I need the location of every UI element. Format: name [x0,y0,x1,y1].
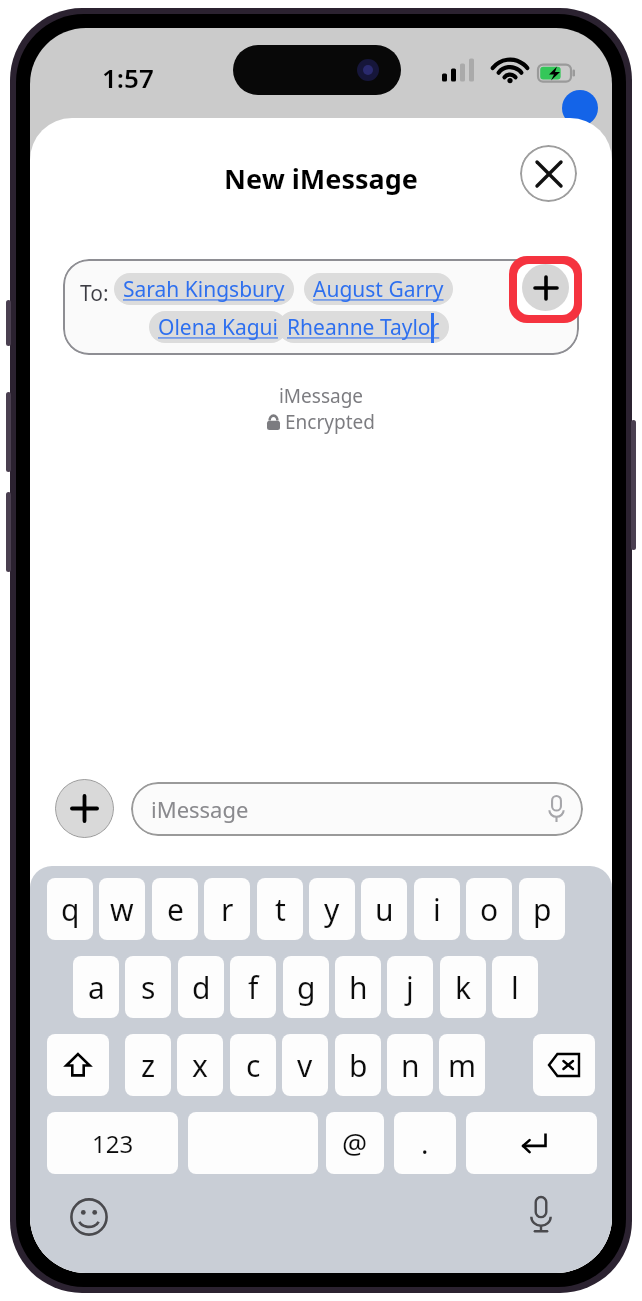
staticText: p [533,889,552,930]
button[interactable]: Shift [47,1034,109,1096]
button[interactable]: d [178,956,224,1018]
staticText: . [421,1124,429,1162]
button[interactable]: To: [63,259,579,355]
button[interactable]: 123 [47,1112,178,1174]
staticText: j [406,967,414,1008]
staticText: a [88,967,105,1008]
staticText: o [480,889,499,930]
staticText: Rheanne Taylor [287,313,440,342]
staticText: Olena Kagui [158,313,278,342]
button[interactable]: l [492,956,538,1018]
button[interactable]: t [257,878,303,940]
staticText: b [349,1045,368,1086]
staticText: iMessage [30,383,612,409]
button[interactable]: j [387,956,433,1018]
button[interactable]: Add attachment [55,779,114,838]
button[interactable]: i [414,878,460,940]
staticText: k [455,967,472,1008]
staticText: l [511,967,519,1008]
button[interactable]: Close [520,145,577,202]
staticText: t [275,889,286,930]
staticText: d [192,967,211,1008]
staticText: y [324,889,340,930]
staticText: i [433,889,441,930]
button[interactable]: Add contact [522,264,569,311]
staticText: s [141,967,156,1008]
button[interactable]: e [152,878,198,940]
staticText: c [246,1045,261,1086]
staticText: v [297,1045,313,1086]
staticText: August Garry [313,275,444,304]
button[interactable]: Return [466,1112,597,1174]
staticText: n [401,1045,420,1086]
staticText: r [221,889,234,930]
button[interactable]: m [439,1034,485,1096]
button[interactable]: q [47,878,93,940]
staticText: f [248,967,259,1008]
staticText: 1:57 [102,60,154,95]
button[interactable]: k [440,956,486,1018]
button[interactable]: c [230,1034,276,1096]
staticText: Encrypted [285,409,375,435]
staticText: To: [80,279,109,308]
button[interactable]: @ [326,1112,384,1174]
staticText: @ [342,1124,368,1162]
button[interactable]: v [282,1034,328,1096]
button[interactable]: Space [188,1112,318,1174]
button[interactable]: . [394,1112,456,1174]
button[interactable]: iMessage [131,782,583,836]
button[interactable]: z [125,1034,171,1096]
button[interactable]: r [204,878,250,940]
button[interactable]: Dictation [518,1192,564,1238]
button[interactable]: Emoji [68,1196,110,1238]
button[interactable]: y [309,878,355,940]
staticText: m [448,1045,477,1086]
button[interactable]: s [125,956,171,1018]
button[interactable]: Sarah Kingsbury [114,273,294,305]
staticText: g [297,967,316,1008]
button[interactable]: g [283,956,329,1018]
staticText: z [141,1045,156,1086]
button[interactable]: f [230,956,276,1018]
button[interactable]: o [466,878,512,940]
button[interactable]: x [177,1034,223,1096]
staticText: w [110,889,134,930]
button[interactable]: h [335,956,381,1018]
button[interactable]: Rheanne Taylor [278,311,449,343]
staticText: x [192,1045,208,1086]
staticText: New iMessage [30,160,612,197]
button[interactable]: a [73,956,119,1018]
staticText: u [375,889,394,930]
staticText: e [167,889,184,930]
staticText: iMessage [151,794,249,824]
button[interactable]: Backspace [533,1034,595,1096]
button[interactable]: w [99,878,145,940]
button[interactable]: n [387,1034,433,1096]
button[interactable]: b [335,1034,381,1096]
staticText: q [61,889,80,930]
button[interactable]: Olena Kagui [149,311,287,343]
staticText: 123 [92,1127,134,1160]
button[interactable]: p [519,878,565,940]
staticText: h [349,967,368,1008]
button[interactable]: u [361,878,407,940]
staticText: Sarah Kingsbury [123,275,285,304]
button[interactable]: August Garry [304,273,453,305]
